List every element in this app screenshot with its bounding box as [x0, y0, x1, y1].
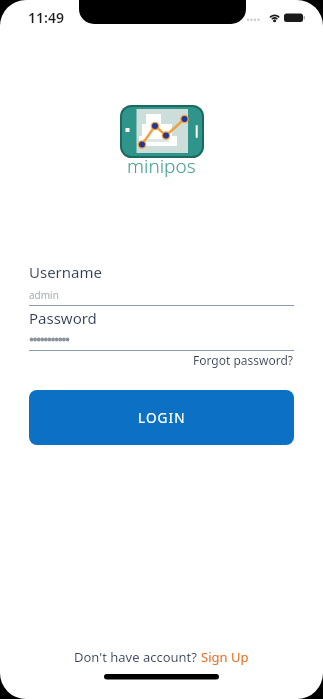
staticText: Sign Up: [201, 648, 249, 666]
staticText: admin: [29, 288, 59, 302]
button[interactable]: Don't have account?: [74, 648, 249, 666]
staticText: Username: [29, 262, 102, 282]
button[interactable]: Username: [29, 262, 294, 306]
button[interactable]: Password: [29, 308, 294, 351]
staticText: LOGIN: [138, 409, 186, 427]
staticText: minipos: [127, 153, 196, 179]
staticText: Don't have account?: [74, 648, 201, 666]
button[interactable]: Forgot password?: [193, 352, 294, 368]
staticText: Password: [29, 308, 97, 328]
button[interactable]: LOGIN: [29, 390, 294, 445]
staticText: 11:49: [28, 8, 64, 27]
